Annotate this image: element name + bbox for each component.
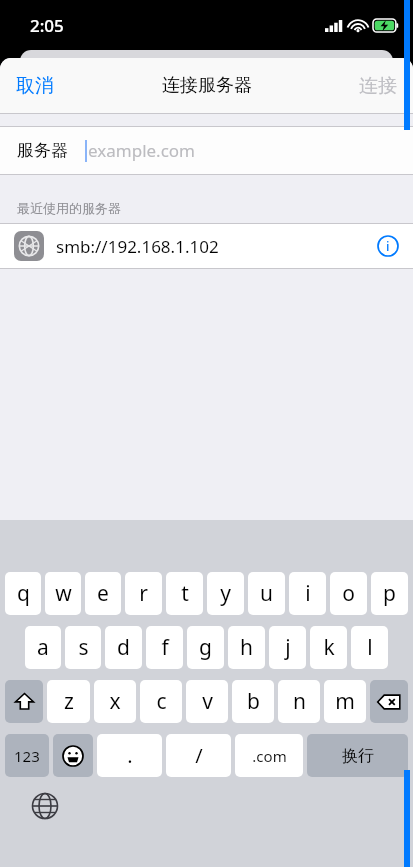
staticText: e [97,579,109,608]
staticText: j [285,633,291,662]
staticText: 取消 [16,74,54,98]
button[interactable]: g [187,626,224,669]
staticText: m [335,687,355,716]
button[interactable]: y [207,572,244,615]
staticText: 服务器 [17,140,68,161]
button[interactable]: q [5,572,41,615]
button[interactable]: . [97,734,162,777]
staticText: k [323,633,335,662]
button[interactable]: t [166,572,203,615]
button[interactable]: 服务器 [0,127,413,174]
staticText: o [342,579,355,608]
button[interactable]: v [186,680,228,723]
staticText: p [383,579,396,608]
staticText: g [199,633,212,662]
staticText: y [220,579,231,608]
button[interactable]: n [278,680,320,723]
staticText: 换行 [342,746,374,766]
button[interactable]: Change keyboard [28,789,62,823]
button[interactable]: m [324,680,366,723]
button[interactable]: More info [363,235,413,257]
staticText: z [64,687,74,716]
button[interactable]: k [310,626,347,669]
staticText: . [127,742,133,769]
button[interactable]: h [228,626,265,669]
staticText: t [181,579,189,608]
button[interactable]: Emoji [53,734,93,777]
staticText: example.com [88,139,195,162]
button[interactable]: Backspace [370,680,408,723]
staticText: f [161,633,169,662]
button[interactable]: z [47,680,90,723]
button[interactable]: w [45,572,81,615]
staticText: c [156,687,167,716]
staticText: i [386,237,390,255]
staticText: 最近使用的服务器 [17,200,121,216]
staticText: x [109,687,121,716]
button[interactable]: smb://192.168.1.102 [0,224,413,268]
staticText: a [37,633,49,662]
staticText: 连接 [359,74,397,98]
button[interactable]: u [248,572,285,615]
button[interactable]: e [85,572,121,615]
button[interactable]: d [105,626,142,669]
button[interactable]: / [166,734,231,777]
button[interactable]: r [125,572,162,615]
staticText: 连接服务器 [162,74,252,97]
staticText: n [293,687,306,716]
button[interactable]: Shift [5,680,43,723]
button[interactable]: i [289,572,326,615]
staticText: v [202,687,213,716]
staticText: smb://192.168.1.102 [56,235,363,258]
button[interactable]: 取消 [0,64,70,108]
button[interactable]: 123 [5,734,49,777]
button[interactable]: s [65,626,101,669]
staticText: h [240,633,253,662]
button[interactable]: o [330,572,367,615]
staticText: r [139,579,148,608]
staticText: i [305,579,311,608]
staticText: d [117,633,130,662]
staticText: .com [252,746,287,766]
button[interactable]: x [94,680,136,723]
staticText: s [78,633,89,662]
button[interactable]: a [25,626,61,669]
button[interactable]: 连接 [343,64,413,108]
staticText: w [55,579,72,608]
button[interactable]: c [140,680,182,723]
staticText: u [260,579,273,608]
staticText: l [367,633,373,662]
staticText: / [195,742,203,769]
button[interactable]: f [146,626,183,669]
button[interactable]: l [351,626,388,669]
button[interactable]: 换行 [307,734,408,777]
staticText: 2:05 [30,14,64,37]
staticText: q [17,579,30,608]
button[interactable]: j [269,626,306,669]
staticText: 123 [14,746,40,766]
button[interactable]: b [232,680,274,723]
staticText: b [247,687,260,716]
button[interactable]: .com [235,734,303,777]
button[interactable]: p [371,572,408,615]
